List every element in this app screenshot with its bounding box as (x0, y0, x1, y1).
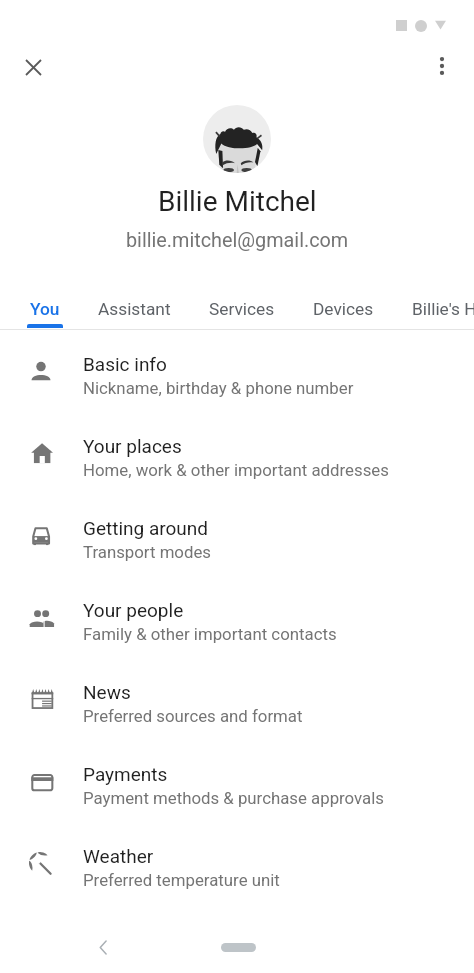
staticText: Transport modes (83, 542, 211, 562)
button[interactable]: Close (9, 43, 55, 89)
button[interactable]: Getting around (0, 498, 474, 580)
staticText: Getting around (83, 517, 209, 539)
button[interactable]: Payments (0, 744, 474, 826)
staticText: Services (209, 299, 275, 319)
button[interactable]: Assistant (79, 289, 190, 328)
staticText: Nickname, birthday & phone number (83, 378, 354, 398)
staticText: billie.mitchel@gmail.com (126, 229, 349, 252)
button[interactable]: Your places (0, 416, 474, 498)
button[interactable]: Basic info (0, 334, 474, 416)
staticText: Payment methods & purchase approvals (83, 788, 384, 808)
staticText: Family & other important contacts (83, 624, 337, 644)
staticText: News (83, 681, 131, 703)
staticText: Devices (313, 299, 374, 319)
staticText: Assistant (98, 299, 171, 319)
staticText: Payments (83, 763, 168, 785)
button[interactable]: More options (419, 43, 465, 89)
staticText: Billie's Home (412, 299, 474, 319)
staticText: Basic info (83, 353, 167, 375)
button[interactable] (203, 105, 271, 173)
staticText: Preferred temperature unit (83, 870, 280, 890)
staticText: You (30, 299, 60, 319)
staticText: Preferred sources and format (83, 706, 303, 726)
button[interactable]: Services (190, 289, 294, 328)
staticText: Weather (83, 845, 154, 867)
button[interactable]: Home (221, 943, 256, 952)
button[interactable]: Billie's Home (393, 289, 474, 328)
staticText: Billie Mitchel (158, 185, 317, 218)
button[interactable]: News (0, 662, 474, 744)
button[interactable]: Back (88, 932, 118, 962)
button[interactable]: Weather (0, 826, 474, 908)
button[interactable]: Your people (0, 580, 474, 662)
button[interactable]: You (11, 289, 79, 328)
staticText: Your people (83, 599, 184, 621)
staticText: Your places (83, 435, 182, 457)
staticText: Home, work & other important addresses (83, 460, 389, 480)
button[interactable]: Devices (294, 289, 393, 328)
